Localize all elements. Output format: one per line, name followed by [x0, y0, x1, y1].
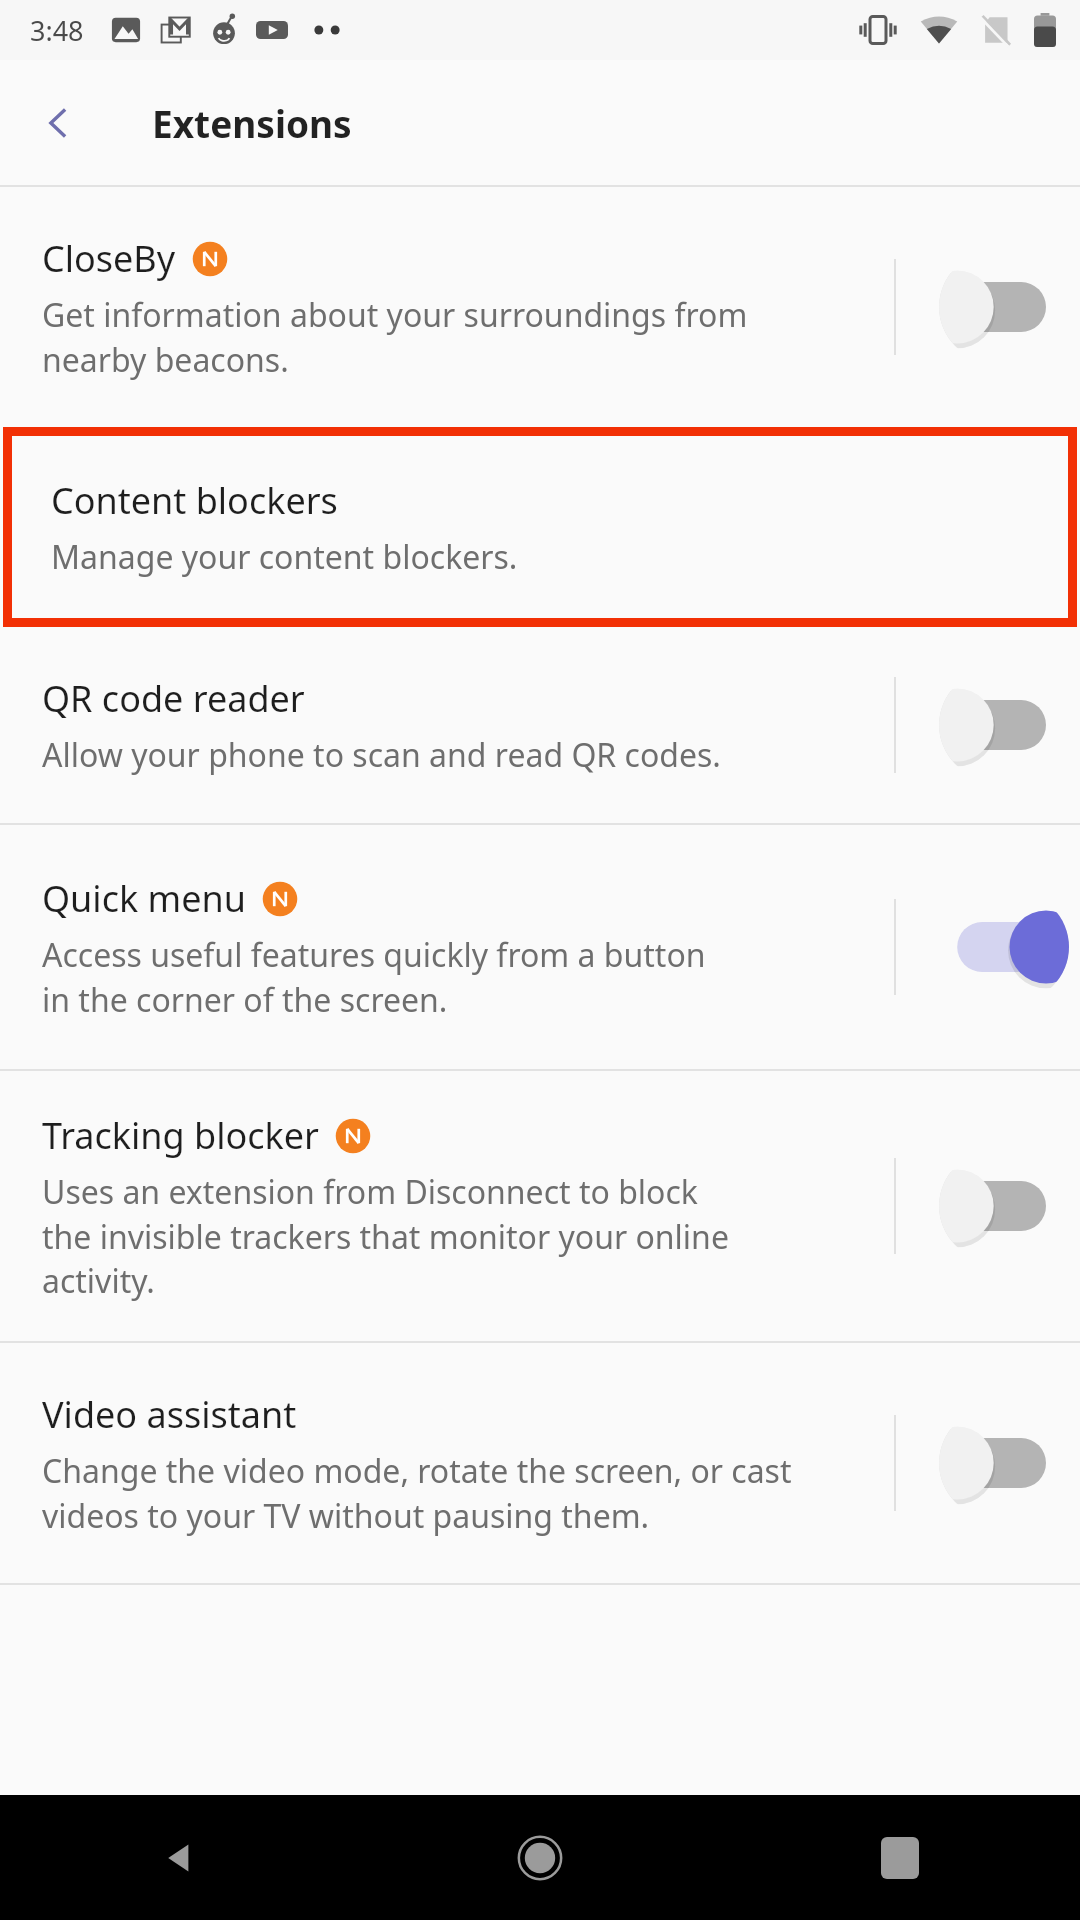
staticText: QR code reader	[42, 674, 305, 723]
button[interactable]: Tracking blocker	[0, 1071, 1080, 1341]
button[interactable]: Back	[0, 1795, 360, 1920]
button[interactable]: QR code reader	[0, 627, 1080, 823]
button[interactable]: Video assistant	[0, 1343, 1080, 1583]
staticText: Video assistant	[42, 1390, 297, 1439]
staticText: Tracking blocker	[42, 1111, 319, 1160]
button[interactable]: Toggle off	[939, 1408, 1069, 1518]
button[interactable]: Toggle off	[939, 1151, 1069, 1261]
button[interactable]: CloseBy	[0, 187, 1080, 427]
staticText: Access useful features quickly from a bu…	[42, 933, 706, 1021]
button[interactable]: Quick menu	[0, 825, 1080, 1069]
staticText: CloseBy	[42, 234, 176, 283]
staticText: Manage your content blockers.	[51, 535, 518, 579]
button[interactable]: Home	[360, 1795, 720, 1920]
staticText: Uses an extension from Disconnect to blo…	[42, 1170, 729, 1302]
staticText: Change the video mode, rotate the screen…	[42, 1449, 792, 1537]
staticText: Content blockers	[51, 476, 338, 525]
staticText: Extensions	[152, 98, 352, 148]
staticText: Get information about your surroundings …	[42, 293, 748, 381]
button[interactable]: Toggle off	[939, 670, 1069, 780]
button[interactable]: Toggle off	[939, 252, 1069, 362]
staticText: Quick menu	[42, 874, 246, 923]
staticText: 3:48	[30, 12, 84, 49]
staticText: Allow your phone to scan and read QR cod…	[42, 733, 721, 777]
button[interactable]: Recent apps	[720, 1795, 1080, 1920]
button[interactable]: Toggle on	[939, 892, 1069, 1002]
button[interactable]: Back	[18, 82, 100, 164]
button[interactable]: Content blockers	[12, 436, 1068, 618]
